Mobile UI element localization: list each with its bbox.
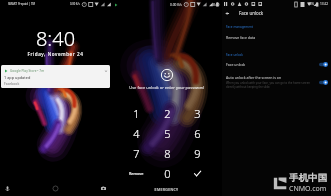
staticText: 2 [164, 106, 171, 121]
staticText: 手机中国 [289, 172, 327, 184]
button[interactable]: Camera [99, 184, 108, 193]
button[interactable]: 4 [121, 123, 152, 143]
staticText: 9 [194, 146, 201, 161]
button[interactable]: Toggle [319, 62, 328, 67]
staticText: CNMO.com [289, 184, 327, 194]
button[interactable]: 7 [121, 143, 152, 163]
staticText: 7 [133, 146, 140, 161]
staticText: 0 [164, 166, 171, 181]
staticText: 3 [194, 106, 201, 121]
button[interactable]: EMERGENCY [111, 187, 222, 196]
button[interactable]: 6 [182, 123, 212, 143]
staticText: 4 [133, 126, 140, 141]
staticText: 5 [164, 126, 171, 141]
staticText: 8 [164, 146, 171, 161]
staticText: Remove face data [226, 35, 256, 40]
button[interactable]: 3 [182, 103, 212, 123]
button[interactable]: 9 [182, 143, 212, 163]
button[interactable]: Toggle [319, 80, 328, 85]
staticText: 8:40 [213, 3, 220, 7]
button[interactable]: 0 [152, 163, 182, 183]
staticText: 6 [194, 126, 201, 141]
button[interactable]: Remove [121, 163, 152, 183]
button[interactable]: Confirm [182, 163, 212, 183]
button[interactable]: Google Play Store • 7m [1, 65, 110, 88]
button[interactable]: Face unlock [222, 59, 331, 70]
staticText: 44% [308, 2, 314, 6]
staticText: Remove [129, 171, 144, 176]
staticText: 1 app updated [4, 75, 31, 80]
staticText: Face management [226, 25, 253, 29]
staticText: Facebook [4, 81, 20, 86]
staticText: When you unlock with your face, you can … [226, 81, 316, 89]
staticText: 1 [133, 106, 140, 121]
button[interactable]: Voice assistant [3, 184, 12, 193]
staticText: 8:40 [0, 25, 111, 52]
button[interactable]: Remove face data [222, 31, 331, 43]
button[interactable]: Back [224, 10, 231, 17]
staticText: 13:22 [320, 2, 329, 6]
button[interactable]: 2 [152, 103, 182, 123]
staticText: Face unlock [226, 53, 244, 57]
button[interactable]: 8 [152, 143, 182, 163]
button[interactable]: 1 [121, 103, 152, 123]
staticText: Friday, November 24 [0, 51, 111, 57]
staticText: Face unlock [226, 62, 246, 67]
staticText: Face unlock [239, 10, 264, 16]
staticText: 0.00 K/s [70, 2, 80, 6]
staticText: Auto unlock after the screen is on [226, 75, 282, 80]
staticText: Google Play Store • 7m [10, 69, 45, 73]
button[interactable]: Unlock [51, 184, 60, 193]
button[interactable]: Auto unlock after the screen is on [222, 72, 331, 92]
staticText: 0.00 K/s [170, 3, 182, 7]
staticText: SMART Prepaid | TM [8, 2, 36, 6]
button[interactable]: 5 [152, 123, 182, 143]
staticText: Use face unlock or enter your password [111, 85, 222, 90]
